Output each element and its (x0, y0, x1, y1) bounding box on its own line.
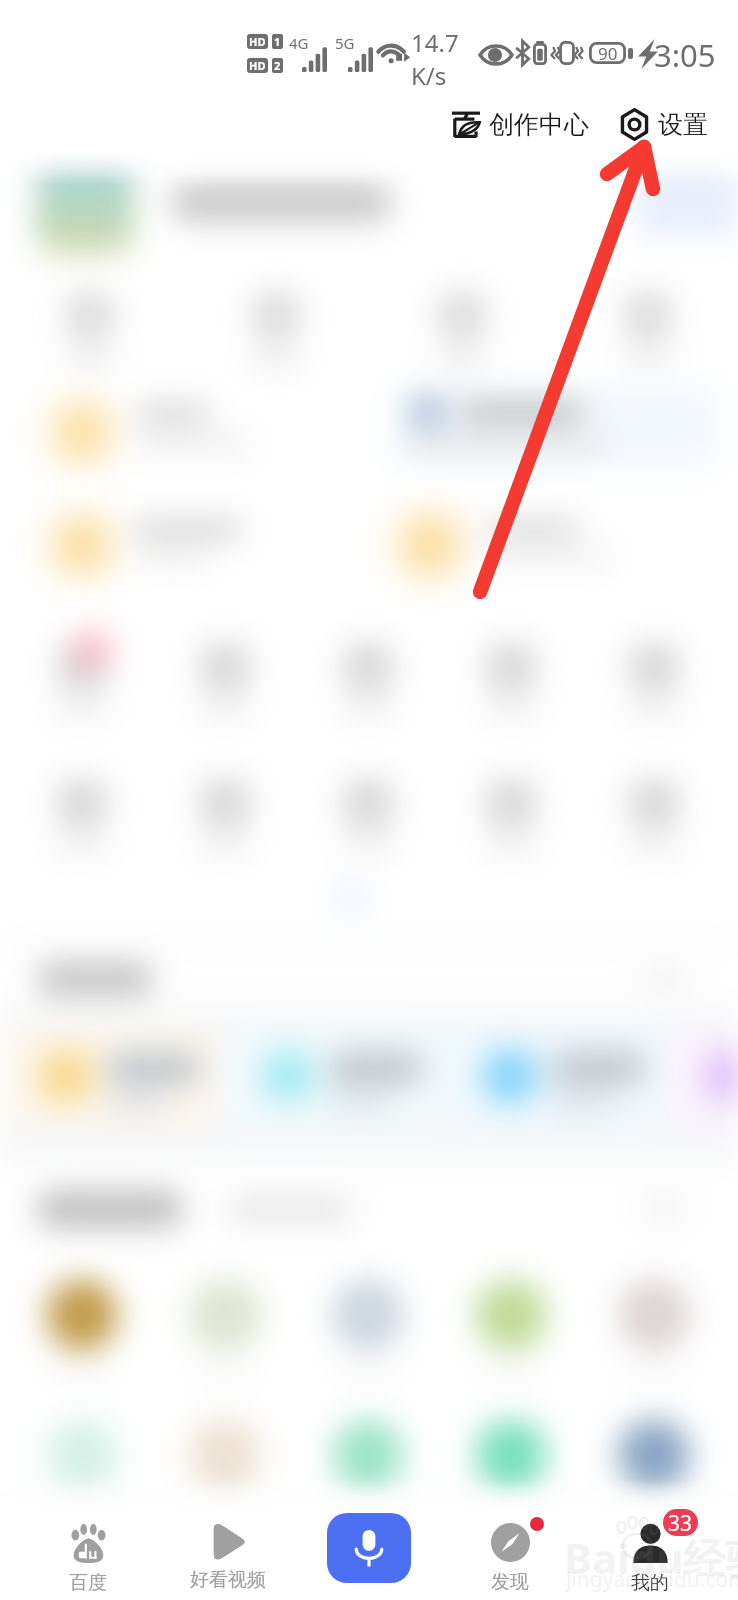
staticText: jingyan.baidu.com (566, 1565, 738, 1594)
staticText: 我的 (631, 1571, 669, 1595)
staticText: 发现 (491, 1570, 529, 1594)
button[interactable]: 发现 (436, 1496, 584, 1600)
staticText: 2 (274, 58, 281, 73)
button[interactable]: 好看视频 (154, 1496, 302, 1600)
staticText: Baidu经验 (564, 1529, 738, 1586)
staticText: 创作中心 (489, 109, 589, 140)
staticText: 3:05 (654, 34, 716, 76)
staticText: 33 (668, 1509, 693, 1536)
staticText: 90 (598, 42, 618, 64)
staticText: 14.7 (411, 26, 459, 59)
staticText: HD (249, 34, 266, 49)
staticText: 好看视频 (190, 1568, 266, 1592)
staticText: 百度 (69, 1571, 107, 1595)
button[interactable]: 创作中心 (444, 101, 597, 148)
button[interactable]: 设置 (612, 101, 716, 148)
button[interactable]: 语音搜索 (327, 1513, 411, 1583)
staticText: 1 (274, 34, 281, 49)
button[interactable]: 33 (576, 1496, 724, 1600)
staticText: 4G (289, 33, 309, 53)
staticText: K/s (411, 59, 447, 92)
button[interactable]: 百度 (14, 1496, 162, 1600)
staticText: 5G (335, 33, 355, 53)
staticText: HD (249, 58, 266, 73)
staticText: 设置 (658, 109, 708, 140)
